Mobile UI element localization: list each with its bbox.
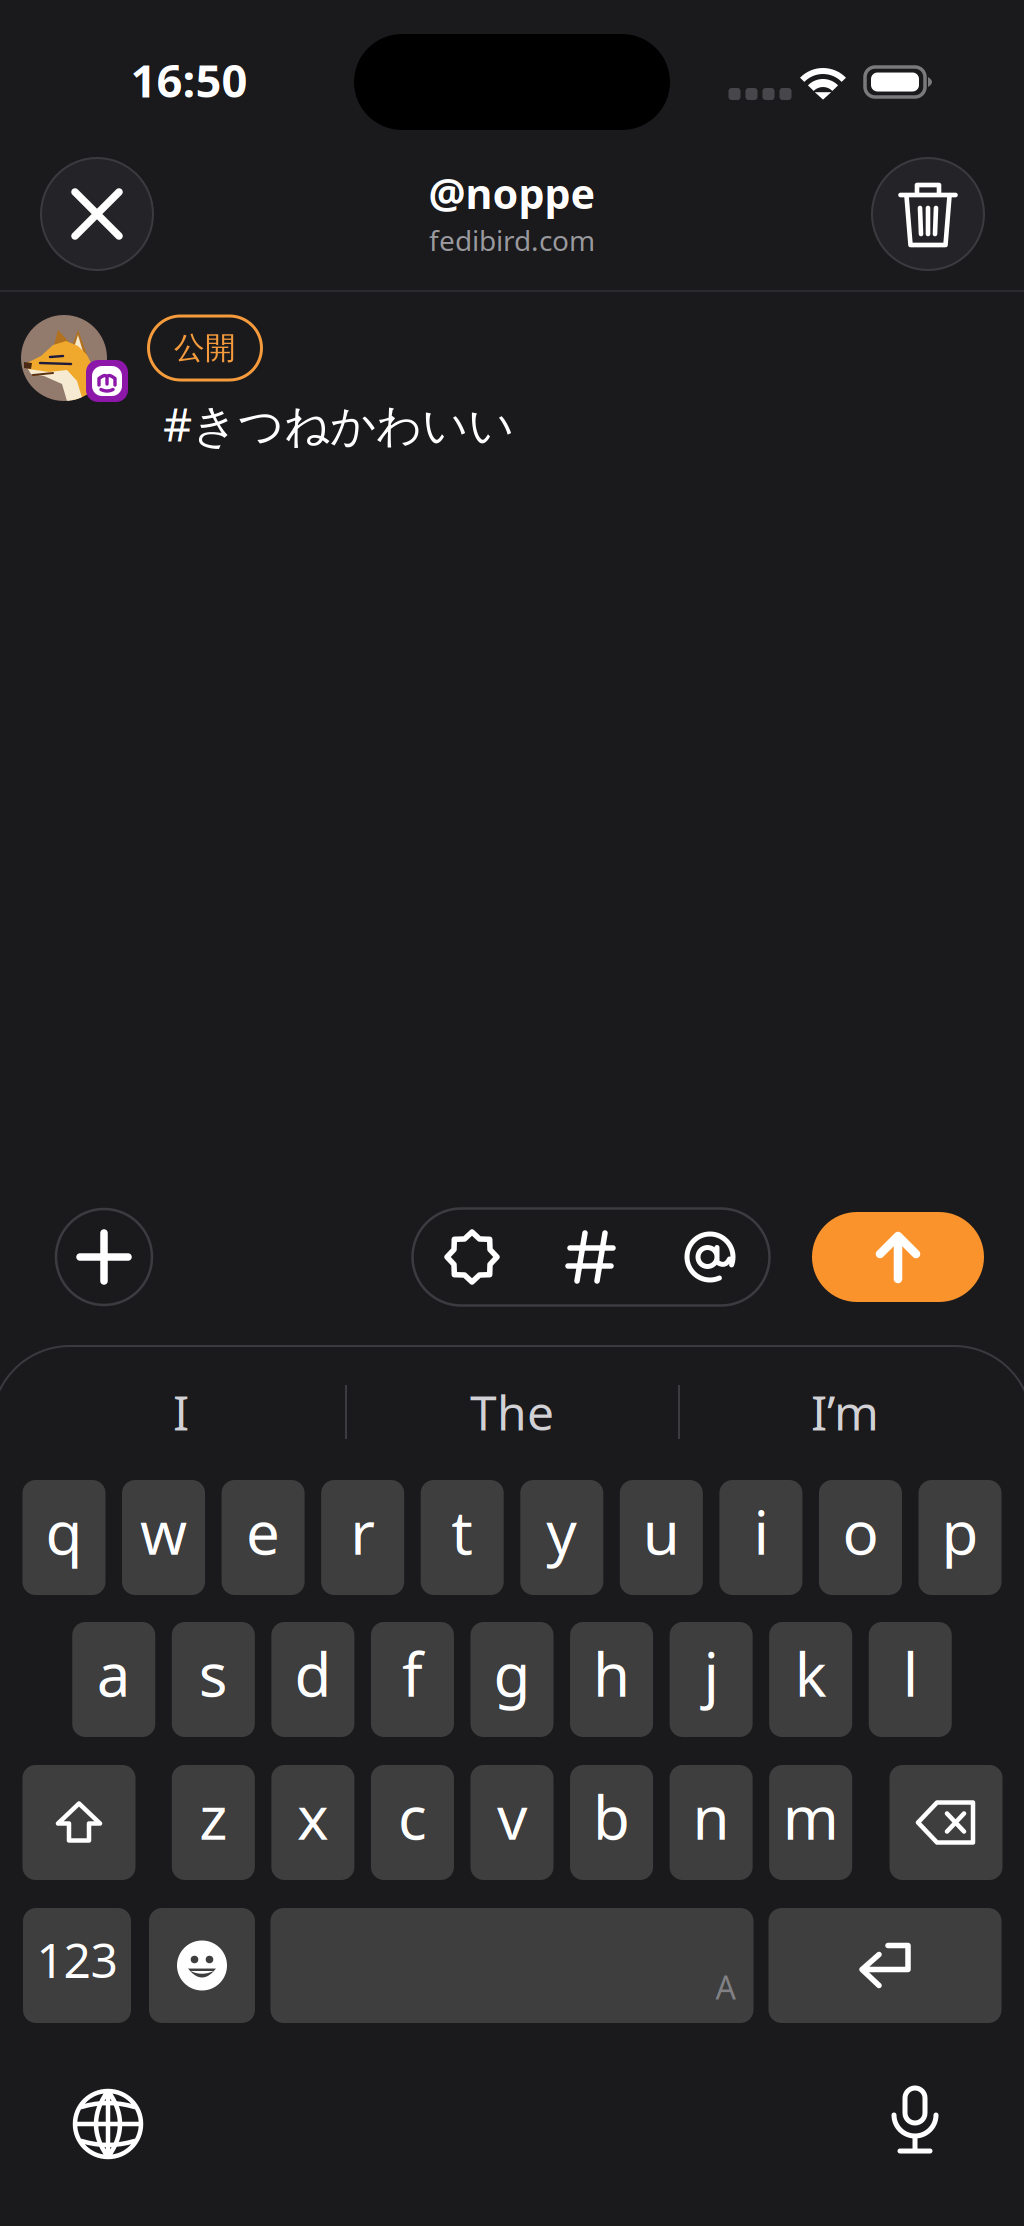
button[interactable]: Add attachment	[56, 1209, 152, 1305]
staticText: u	[643, 1491, 680, 1572]
staticText: g	[493, 1633, 530, 1714]
staticText: f	[402, 1633, 423, 1714]
staticText: e	[246, 1491, 280, 1572]
button[interactable]: b	[570, 1765, 653, 1880]
staticText: z	[199, 1776, 227, 1857]
staticText: #きつねかわいい	[163, 393, 514, 455]
button[interactable]: Space	[270, 1908, 753, 2023]
button[interactable]: p	[918, 1480, 1001, 1595]
button[interactable]: x	[271, 1765, 354, 1880]
staticText: v	[497, 1776, 527, 1857]
button[interactable]: f	[371, 1622, 454, 1737]
staticText: l	[903, 1633, 918, 1714]
staticText: I’m	[811, 1379, 879, 1445]
button[interactable]: I	[15, 1357, 347, 1467]
button[interactable]: e	[222, 1480, 305, 1595]
staticText: q	[45, 1491, 82, 1572]
staticText: p	[941, 1491, 978, 1572]
button[interactable]: a	[72, 1622, 155, 1737]
button[interactable]: k	[769, 1622, 852, 1737]
button[interactable]: h	[570, 1622, 653, 1737]
button[interactable]: d	[271, 1622, 354, 1737]
staticText: A	[715, 1965, 735, 2009]
staticText: r	[350, 1491, 375, 1572]
button[interactable]: w	[122, 1480, 205, 1595]
staticText: fedibird.com	[429, 221, 595, 259]
button[interactable]: Delete draft	[872, 158, 984, 270]
staticText: y	[546, 1491, 577, 1572]
button[interactable]: o	[819, 1480, 902, 1595]
button[interactable]: l	[869, 1622, 952, 1737]
button[interactable]: g	[470, 1622, 553, 1737]
staticText: i	[753, 1491, 768, 1572]
staticText: s	[199, 1633, 228, 1714]
staticText: t	[451, 1491, 473, 1572]
button[interactable]: y	[520, 1480, 603, 1595]
button[interactable]: n	[670, 1765, 753, 1880]
staticText: b	[593, 1776, 630, 1857]
button[interactable]: u	[620, 1480, 703, 1595]
button[interactable]: Custom emoji	[412, 1208, 531, 1305]
staticText: 16:50	[130, 49, 247, 111]
staticText: @noppe	[428, 165, 595, 221]
button[interactable]: v	[470, 1765, 553, 1880]
staticText: w	[140, 1491, 187, 1572]
button[interactable]: s	[172, 1622, 255, 1737]
staticText: n	[693, 1776, 730, 1857]
button[interactable]: Close	[41, 158, 153, 270]
staticText: d	[294, 1633, 331, 1714]
button[interactable]: Mention	[650, 1208, 769, 1305]
staticText: o	[842, 1491, 878, 1572]
button[interactable]: r	[321, 1480, 404, 1595]
button[interactable]: Hashtag	[531, 1208, 650, 1305]
button[interactable]: Dictate	[867, 2073, 963, 2169]
staticText: h	[593, 1633, 630, 1714]
button[interactable]: j	[670, 1622, 753, 1737]
staticText: j	[704, 1633, 719, 1714]
staticText: a	[97, 1633, 131, 1714]
button[interactable]: i	[719, 1480, 802, 1595]
button[interactable]: I’m	[679, 1357, 1011, 1467]
button[interactable]: Emoji	[149, 1908, 255, 2023]
staticText: 123	[36, 1927, 117, 1992]
button[interactable]: 123	[23, 1908, 131, 2023]
staticText: 公開	[174, 329, 236, 367]
staticText: m	[783, 1776, 839, 1857]
staticText: c	[398, 1776, 427, 1857]
staticText: k	[795, 1633, 827, 1714]
staticText: The	[470, 1379, 554, 1445]
staticText: x	[297, 1776, 329, 1857]
button[interactable]: Shift	[22, 1765, 135, 1880]
button[interactable]: m	[769, 1765, 852, 1880]
button[interactable]: 公開	[148, 316, 261, 380]
button[interactable]: Delete	[889, 1765, 1002, 1880]
button[interactable]: c	[371, 1765, 454, 1880]
button[interactable]: Post	[812, 1212, 984, 1302]
staticText: I	[173, 1379, 189, 1445]
button[interactable]: q	[22, 1480, 105, 1595]
button[interactable]: t	[421, 1480, 504, 1595]
button[interactable]: The	[347, 1357, 677, 1467]
button[interactable]: z	[172, 1765, 255, 1880]
button[interactable]: Return	[768, 1908, 1001, 2023]
button[interactable]: Next keyboard	[60, 2076, 156, 2172]
